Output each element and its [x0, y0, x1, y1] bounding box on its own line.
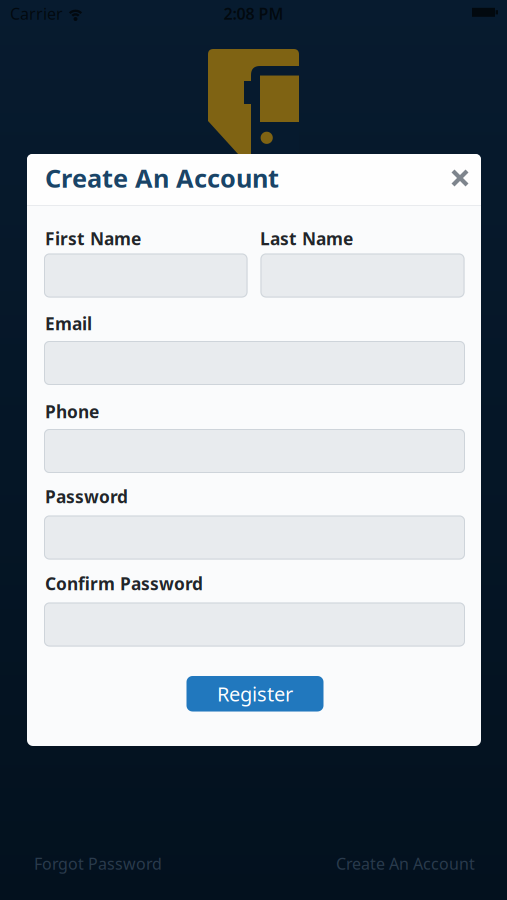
button[interactable]: Forgot Password	[34, 853, 162, 874]
staticText: Last Name	[260, 227, 353, 250]
staticText: Register	[217, 680, 293, 707]
button[interactable]	[44, 253, 247, 297]
button[interactable]	[44, 515, 465, 559]
button[interactable]	[44, 602, 465, 646]
staticText: Carrier	[10, 3, 63, 24]
staticText: Forgot Password	[34, 853, 162, 874]
button[interactable]	[44, 341, 465, 385]
staticText: 2:08 PM	[223, 3, 283, 24]
button[interactable]	[44, 429, 465, 473]
staticText: Create An Account	[336, 853, 475, 874]
button[interactable]: Register	[186, 676, 323, 711]
staticText: Create An Account	[45, 161, 279, 195]
staticText: Email	[45, 312, 92, 335]
button[interactable]: Create An Account	[0, 853, 475, 874]
staticText: Confirm Password	[45, 572, 203, 595]
staticText: Password	[45, 485, 128, 508]
staticText: Phone	[45, 400, 99, 423]
button[interactable]	[445, 163, 475, 193]
staticText: First Name	[45, 227, 141, 250]
button[interactable]	[260, 253, 464, 297]
